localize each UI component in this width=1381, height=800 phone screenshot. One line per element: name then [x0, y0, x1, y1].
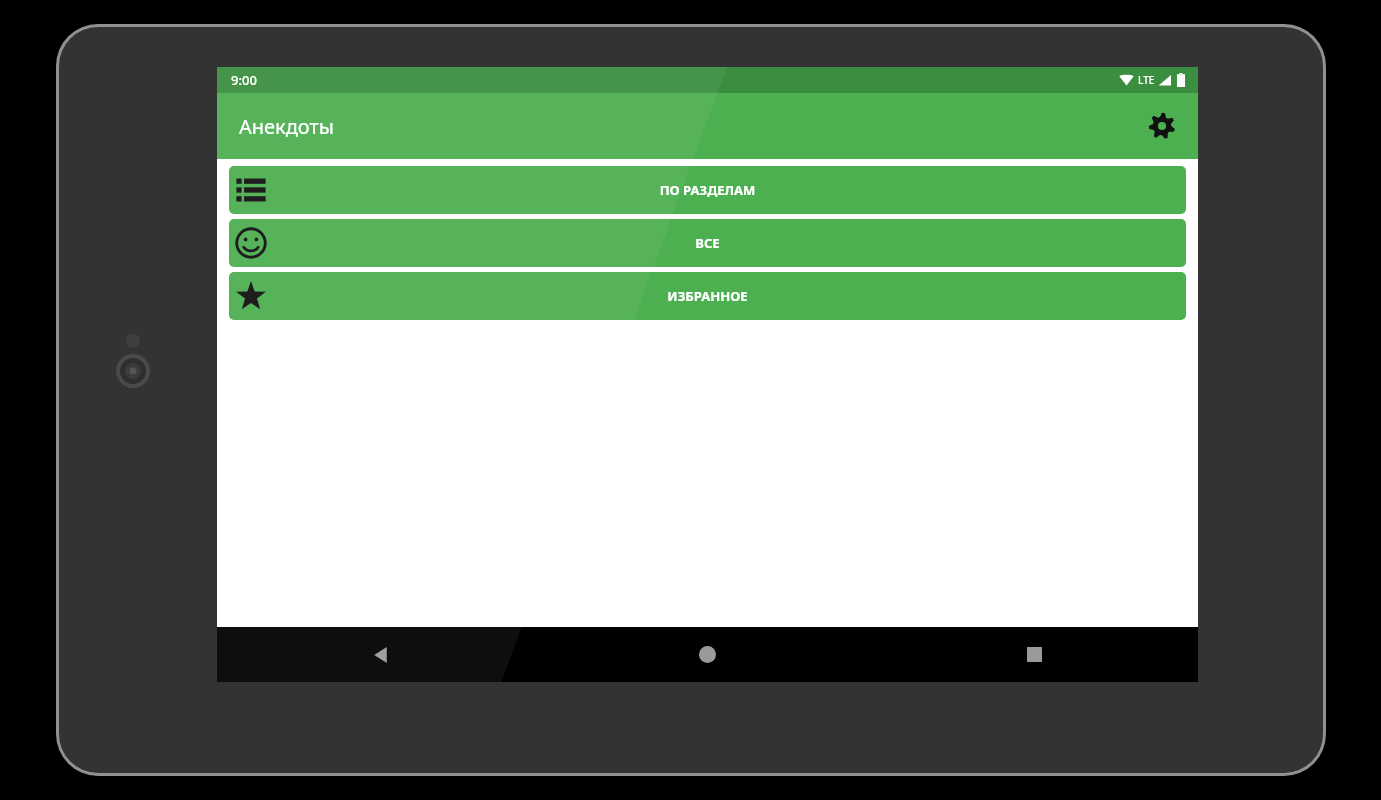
staticText: ПО РАЗДЕЛАМ — [281, 181, 1134, 199]
button[interactable]: Recents — [871, 627, 1198, 682]
staticText: LTE — [1138, 73, 1155, 87]
button[interactable]: ИЗБРАННОЕ — [229, 272, 1186, 320]
button[interactable]: ВСЕ — [229, 219, 1186, 267]
button[interactable]: ПО РАЗДЕЛАМ — [229, 166, 1186, 214]
button[interactable]: Settings — [1140, 104, 1184, 148]
staticText: Анекдоты — [239, 113, 334, 140]
staticText: ВСЕ — [281, 234, 1134, 252]
staticText: ИЗБРАННОЕ — [281, 287, 1134, 305]
button[interactable]: Back — [217, 627, 544, 682]
button[interactable]: Home — [544, 627, 871, 682]
staticText: 9:00 — [231, 71, 257, 89]
